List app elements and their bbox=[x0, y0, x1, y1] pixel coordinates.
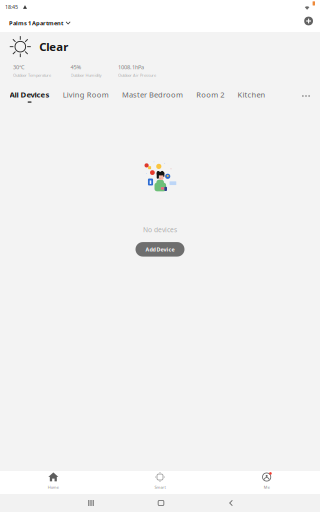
staticText: Add Device bbox=[145, 246, 174, 253]
staticText: Outdoor Humidity bbox=[70, 72, 101, 78]
button[interactable]: All Devices bbox=[3, 89, 56, 103]
staticText: Palms 1 Apartment bbox=[9, 19, 63, 27]
button[interactable]: Add Device bbox=[135, 242, 184, 257]
button[interactable]: Smart bbox=[107, 471, 213, 494]
staticText: Outdoor Air Pressure bbox=[118, 72, 156, 78]
staticText: Clear bbox=[39, 39, 68, 54]
staticText: Outdoor Temperature bbox=[13, 72, 51, 78]
staticText: Living Room bbox=[63, 89, 109, 100]
staticText: Master Bedroom bbox=[122, 89, 183, 100]
button[interactable]: More rooms bbox=[296, 85, 316, 107]
button[interactable]: Me bbox=[213, 471, 320, 494]
staticText: No devices bbox=[143, 225, 177, 234]
button[interactable]: Recent apps bbox=[56, 494, 126, 512]
staticText: Kitchen bbox=[237, 89, 265, 100]
button[interactable]: Living Room bbox=[56, 89, 115, 102]
button[interactable]: Master Bedroom bbox=[115, 89, 190, 102]
staticText: 45% bbox=[70, 63, 81, 71]
staticText: 1008.1hPa bbox=[118, 63, 144, 71]
staticText: All Devices bbox=[10, 89, 50, 100]
staticText: Me bbox=[264, 484, 270, 490]
staticText: 30°C bbox=[13, 63, 25, 71]
button[interactable]: Home bbox=[0, 471, 107, 494]
button[interactable]: Home bbox=[126, 494, 196, 512]
staticText: 18:45 bbox=[5, 3, 18, 11]
button[interactable]: Kitchen bbox=[231, 89, 272, 102]
button[interactable]: Back bbox=[196, 494, 266, 512]
button[interactable]: Room 2 bbox=[190, 89, 231, 102]
button[interactable]: Add device bbox=[304, 17, 315, 29]
staticText: Smart bbox=[154, 484, 165, 490]
staticText: Room 2 bbox=[196, 89, 224, 100]
staticText: Home bbox=[48, 484, 59, 490]
button[interactable]: Palms 1 Apartment bbox=[9, 19, 70, 27]
